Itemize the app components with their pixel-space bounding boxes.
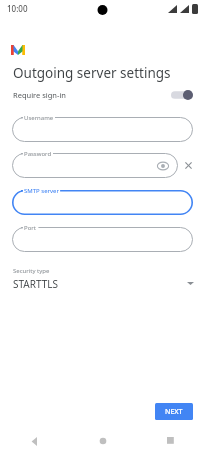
button[interactable]: NEXT [155, 403, 193, 420]
staticText: 10:00 [7, 3, 28, 14]
staticText: Outgoing server settings [13, 64, 171, 82]
button[interactable]: Show password [156, 159, 170, 173]
staticText: Password [24, 150, 52, 158]
button[interactable]: Username [12, 117, 193, 142]
button[interactable]: Security type [0, 264, 205, 296]
staticText: Username [24, 114, 54, 122]
staticText: SMTP server [24, 187, 59, 195]
staticText: NEXT [165, 407, 183, 417]
button[interactable]: Back [0, 426, 69, 456]
button[interactable]: Port [12, 227, 193, 252]
staticText: Require sign-in [13, 90, 66, 100]
button[interactable]: Home [69, 426, 137, 456]
staticText: Port [24, 224, 36, 232]
button[interactable]: Clear [183, 160, 194, 171]
button[interactable]: Password [12, 153, 178, 178]
staticText: STARTTLS [13, 277, 59, 291]
button[interactable]: Require sign-in [0, 85, 205, 105]
button[interactable]: SMTP server [12, 190, 193, 215]
staticText: Security type [13, 267, 50, 275]
button[interactable]: Recents [137, 426, 205, 456]
